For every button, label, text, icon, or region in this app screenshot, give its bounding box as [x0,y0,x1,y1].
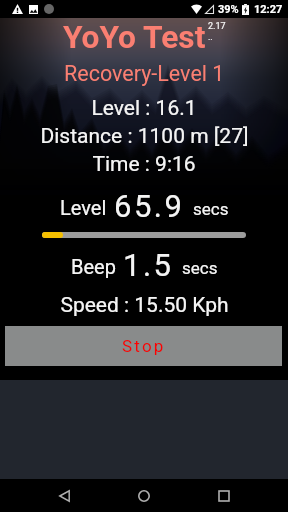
button[interactable]: Recent apps [204,479,244,512]
staticText: Stop [122,336,166,356]
staticText: secs [193,199,229,219]
staticText: Time : 9:16 [92,152,196,177]
staticText: YoYo Test [63,19,206,56]
staticText: Beep [71,255,116,278]
staticText: Level : 16.1 [91,96,197,121]
staticText: .. [208,32,213,43]
staticText: Recovery-Level 1 [64,61,225,86]
staticText: Level [60,196,107,219]
button[interactable]: Stop [5,326,282,366]
staticText: 65.9 [114,188,185,224]
staticText: 39% [218,3,239,16]
staticText: 12:27 [254,3,283,16]
button[interactable]: Home [124,479,164,512]
staticText: Speed : 15.50 Kph [60,293,229,318]
button[interactable]: Back [44,479,84,512]
staticText: secs [182,258,218,278]
staticText: 2.17 [208,21,226,32]
staticText: Distance : 1100 m [27] [40,124,249,149]
staticText: 1.5 [123,247,174,283]
